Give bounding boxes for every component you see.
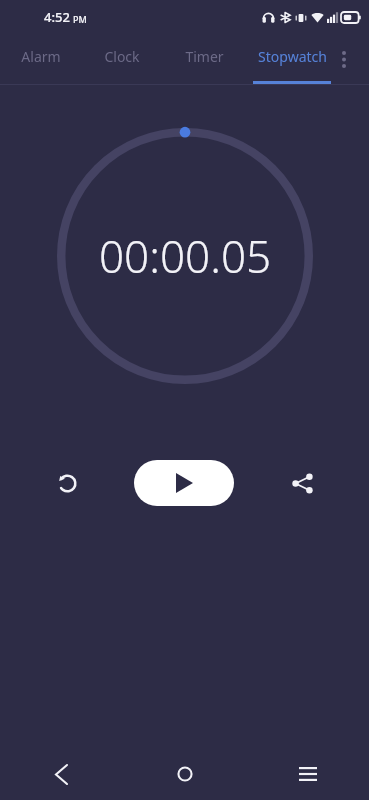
button[interactable]: Recent apps — [246, 748, 369, 800]
staticText: Alarm — [21, 47, 61, 66]
button[interactable]: Clock — [81, 34, 163, 84]
staticText: Clock — [104, 47, 140, 66]
staticText: 4:52 — [44, 8, 70, 26]
button[interactable]: Home — [123, 748, 246, 800]
button[interactable]: Alarm — [0, 34, 81, 84]
staticText: PM — [73, 13, 87, 25]
button[interactable]: Start — [134, 460, 234, 506]
button[interactable]: Reset — [44, 460, 90, 506]
button[interactable]: Share — [279, 460, 325, 506]
staticText: Stopwatch — [258, 47, 327, 66]
button[interactable]: Timer — [163, 34, 245, 84]
button[interactable]: More options — [331, 46, 357, 72]
button[interactable]: Stopwatch — [245, 34, 339, 84]
staticText: 00:00.05 — [99, 226, 272, 286]
staticText: Timer — [185, 47, 224, 66]
button[interactable]: Back — [0, 748, 123, 800]
